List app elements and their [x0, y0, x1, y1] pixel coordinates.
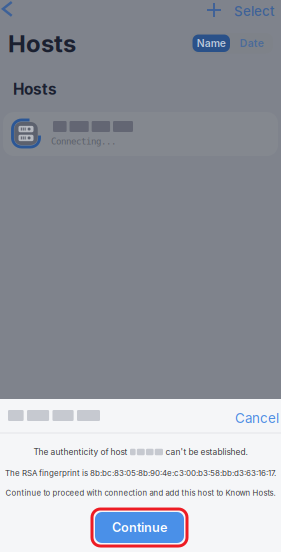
- staticText: Hosts: [13, 80, 57, 99]
- staticText: Hosts: [8, 29, 76, 58]
- staticText: Cancel: [235, 410, 279, 426]
- staticText: Name: [197, 37, 226, 50]
- staticText: The authenticity of host: [33, 447, 127, 457]
- staticText: Select: [234, 3, 275, 19]
- staticText: Date: [240, 37, 264, 50]
- button[interactable]: Add host: [200, 0, 228, 24]
- button[interactable]: Name: [192, 34, 230, 52]
- button[interactable]: Back: [0, 0, 22, 22]
- staticText: Continue to proceed with connection and …: [5, 488, 275, 498]
- button[interactable]: Cancel: [230, 404, 281, 432]
- button[interactable]: Connecting...: [3, 112, 278, 156]
- staticText: Continue: [112, 520, 167, 535]
- staticText: can't be established.: [165, 447, 247, 457]
- staticText: The RSA fingerprint is 8b:bc:83:05:8b:90…: [5, 468, 276, 478]
- staticText: Connecting...: [51, 136, 116, 147]
- button[interactable]: Date: [233, 34, 270, 52]
- button[interactable]: Continue: [92, 509, 187, 546]
- button[interactable]: Select: [229, 0, 280, 25]
